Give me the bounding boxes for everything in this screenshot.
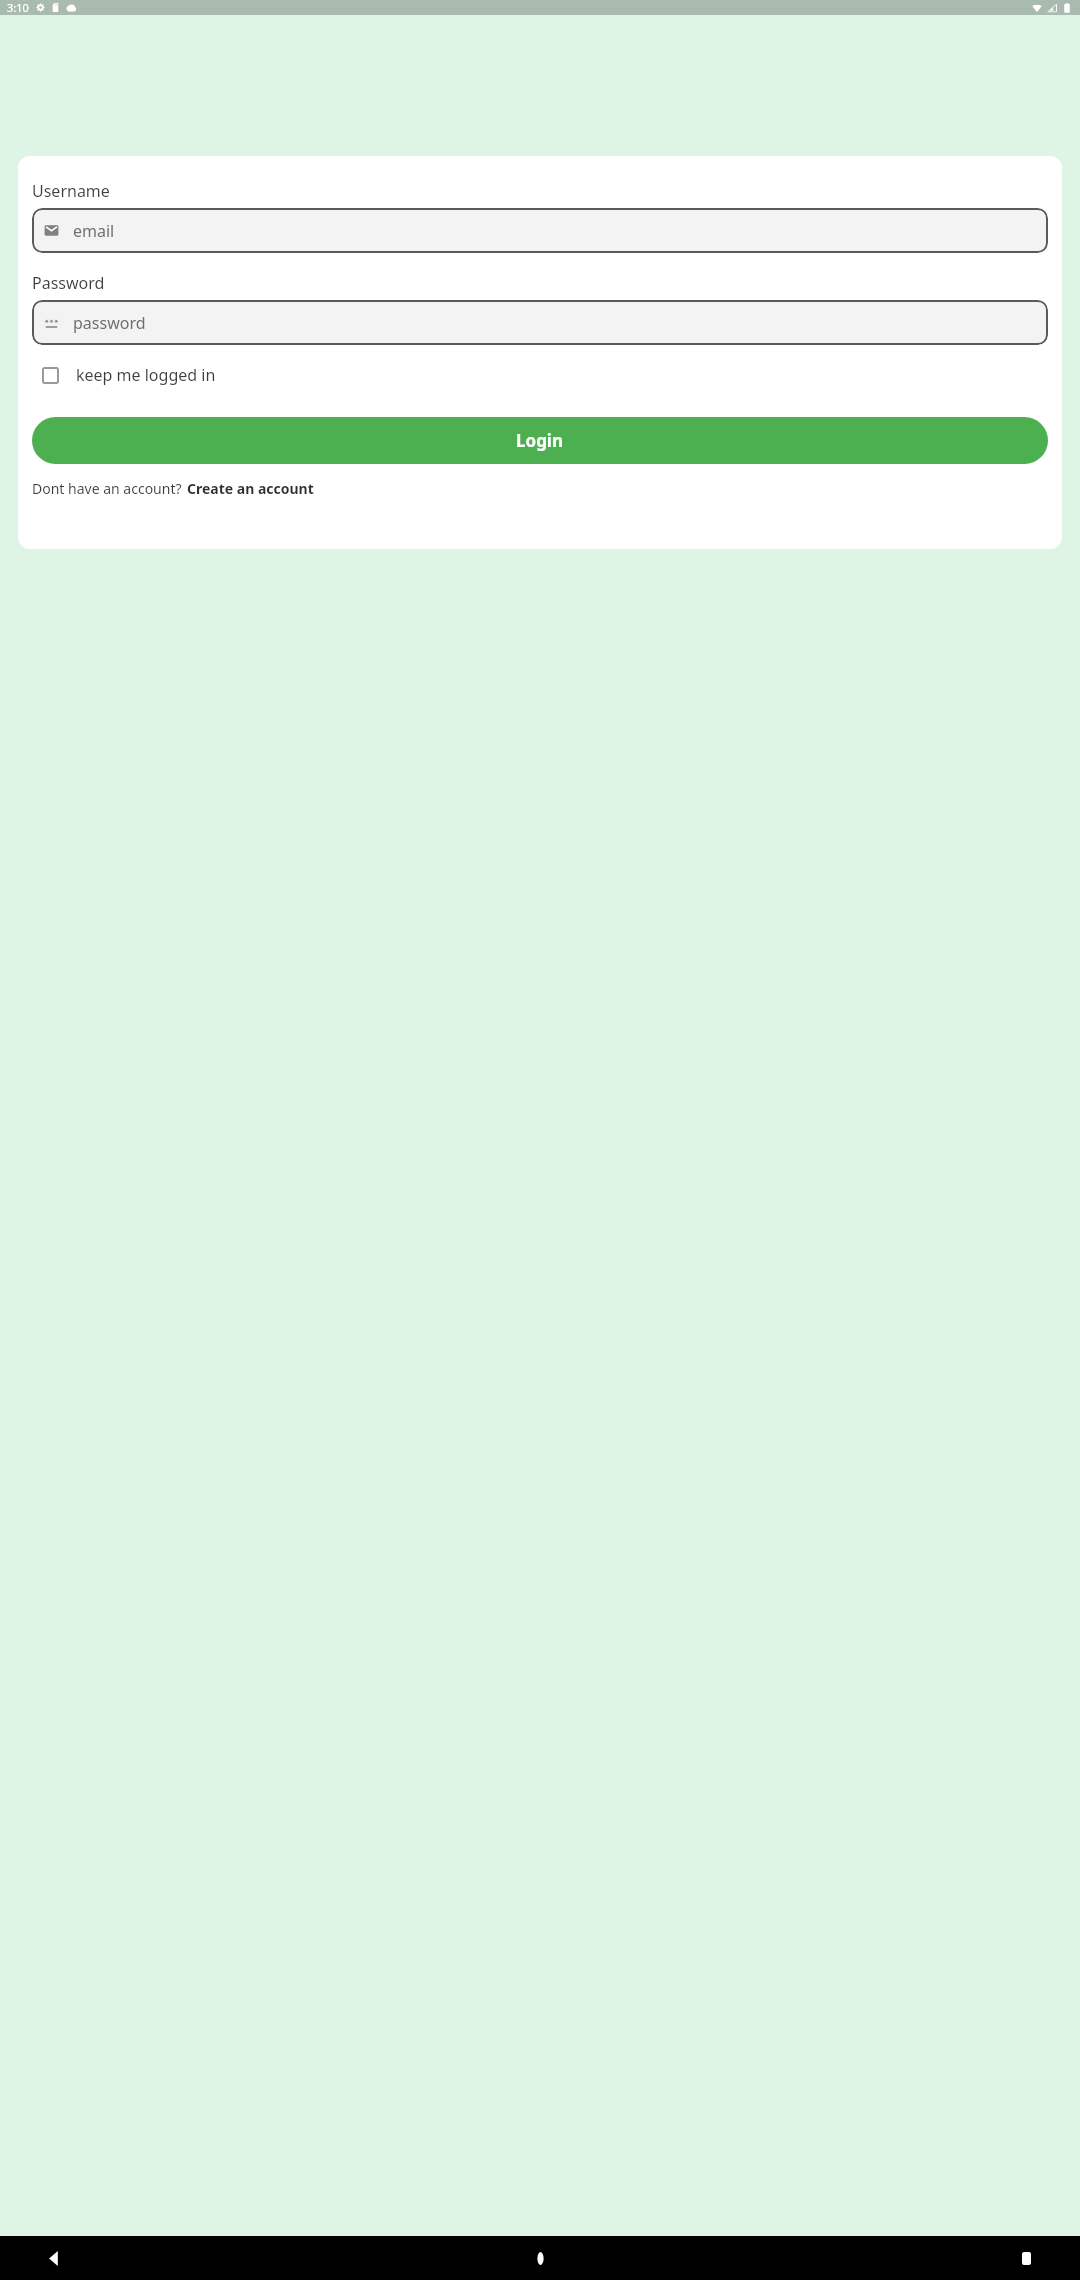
staticText: keep me logged in [76,364,216,386]
staticText: Login [516,429,564,452]
staticText: email [73,220,115,242]
staticText: Password [32,272,105,294]
staticText: 3:10 [7,0,29,15]
button[interactable]: Recents [1008,2240,1044,2276]
staticText: password [73,312,146,334]
button[interactable]: password [32,300,1048,345]
button[interactable]: Home [522,2240,558,2276]
button[interactable]: email [32,208,1048,253]
staticText: Dont have an account? [32,479,182,498]
staticText: Create an account [187,479,314,498]
button[interactable]: keep me logged in [32,360,216,390]
staticText: Username [32,180,110,202]
button[interactable]: Login [32,417,1048,464]
button[interactable]: Create an account [187,479,314,498]
button[interactable]: Back [36,2240,72,2276]
